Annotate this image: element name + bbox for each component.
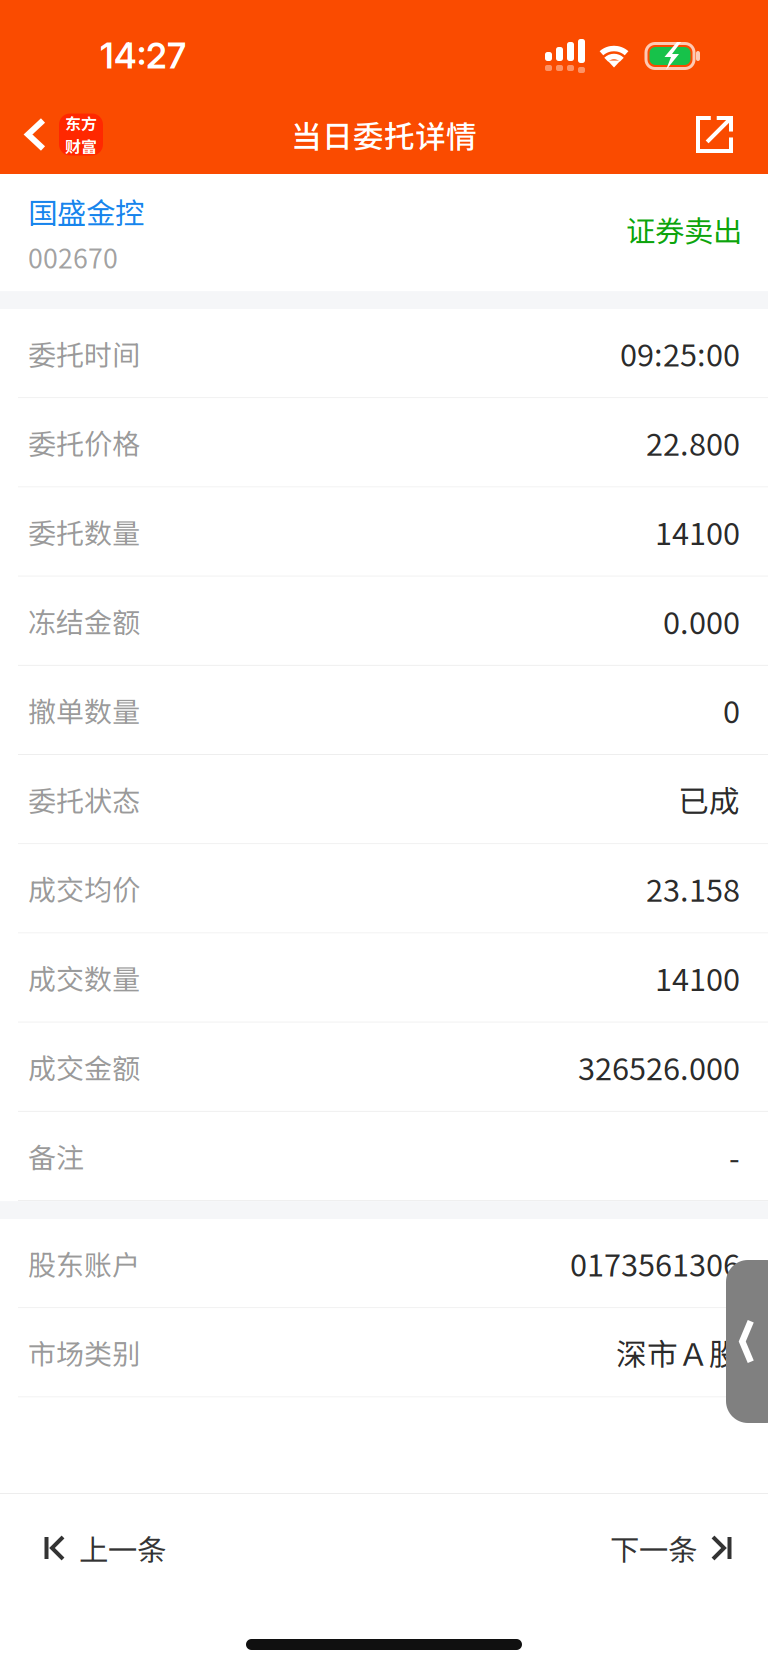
staticText: 002670 (28, 237, 118, 276)
staticText: 0 (723, 688, 740, 732)
staticText: 14100 (655, 509, 740, 554)
staticText: 当日委托详情 (291, 112, 477, 157)
staticText: 冻结金额 (28, 600, 140, 641)
staticText: 上一条 (79, 1527, 166, 1569)
staticText: 备注 (28, 1136, 84, 1176)
staticText: 0173561306 (570, 1241, 740, 1285)
staticText: 委托价格 (28, 422, 140, 463)
staticText: 22.800 (646, 420, 740, 465)
staticText: 09:25:00 (620, 331, 740, 375)
staticText: 下一条 (610, 1527, 697, 1569)
staticText: 成交均价 (28, 868, 140, 909)
staticText: 326526.000 (578, 1045, 740, 1089)
staticText: - (729, 1134, 740, 1178)
button[interactable]: 下一条 (580, 1494, 768, 1594)
staticText: 14:27 (100, 35, 186, 77)
button[interactable]: Back (726, 1260, 768, 1423)
staticText: 0.000 (663, 599, 740, 643)
staticText: 东方 财富 (65, 111, 97, 158)
staticText: 委托数量 (28, 511, 140, 552)
staticText: 委托时间 (28, 333, 140, 373)
staticText: 14100 (655, 955, 740, 1000)
button[interactable]: Back (0, 95, 113, 174)
staticText: 已成 (678, 777, 740, 821)
staticText: 成交金额 (28, 1046, 140, 1087)
staticText: 23.158 (646, 866, 740, 911)
staticText: 深市Ａ股 (616, 1330, 740, 1375)
staticText: 市场类别 (28, 1332, 140, 1373)
staticText: 国盛金控 (28, 190, 144, 232)
button[interactable]: Share (686, 95, 768, 174)
staticText: 撤单数量 (28, 690, 140, 730)
staticText: 委托状态 (28, 779, 140, 819)
staticText: 股东账户 (28, 1243, 140, 1283)
staticText: 证券卖出 (626, 208, 742, 250)
button[interactable]: 上一条 (0, 1494, 196, 1594)
staticText: 成交数量 (28, 957, 140, 998)
